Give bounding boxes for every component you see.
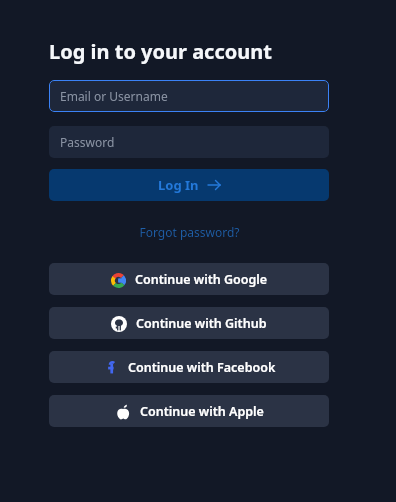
- button[interactable]: Continue with Facebook: [49, 351, 329, 383]
- staticText: Continue with Google: [135, 271, 268, 288]
- button[interactable]: Log In: [49, 169, 329, 201]
- staticText: Password: [60, 134, 115, 150]
- button[interactable]: Continue with Apple: [49, 395, 329, 427]
- staticText: Log in to your account: [49, 38, 272, 65]
- staticText: Continue with Github: [136, 315, 267, 332]
- button[interactable]: Password: [49, 126, 329, 158]
- staticText: Log In: [158, 176, 199, 194]
- staticText: Continue with Facebook: [128, 359, 276, 376]
- button[interactable]: Continue with Google: [49, 263, 329, 295]
- button[interactable]: Continue with Github: [49, 307, 329, 339]
- staticText: Email or Username: [60, 88, 168, 104]
- staticText: Continue with Apple: [140, 403, 264, 420]
- staticText: Forgot password?: [139, 224, 240, 240]
- button[interactable]: Forgot password?: [133, 222, 246, 242]
- button[interactable]: Email or Username: [49, 80, 329, 112]
